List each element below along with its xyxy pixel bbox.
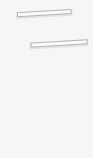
- button[interactable]: First bar: [0, 0, 93, 158]
- button[interactable]: Second bar: [0, 0, 93, 158]
